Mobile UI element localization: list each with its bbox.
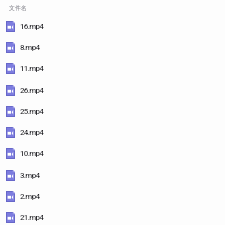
button[interactable]: Video file — [0, 191, 225, 212]
staticText: 11.mp4 — [20, 64, 44, 73]
other: Video file — [6, 21, 15, 32]
button[interactable]: Video file — [0, 85, 225, 106]
other: Video file — [6, 191, 15, 202]
staticText: 16.mp4 — [20, 22, 44, 31]
staticText: 2.mp4 — [20, 192, 40, 201]
button[interactable]: Video file — [0, 42, 225, 63]
button[interactable]: Video file — [0, 212, 225, 225]
button[interactable]: Video file — [0, 106, 225, 127]
other: Video file — [6, 42, 15, 53]
other: Video file — [6, 148, 15, 159]
staticText: 24.mp4 — [20, 128, 44, 137]
other: Video file — [6, 212, 15, 223]
button[interactable]: Video file — [0, 21, 225, 42]
staticText: 10.mp4 — [20, 149, 44, 158]
button[interactable]: Video file — [0, 170, 225, 191]
button[interactable]: Video file — [0, 63, 225, 84]
other: Video file — [6, 63, 15, 74]
staticText: 3.mp4 — [20, 171, 40, 180]
staticText: 文件名 — [9, 4, 27, 11]
staticText: 25.mp4 — [20, 107, 44, 116]
other: Video file — [6, 85, 15, 96]
staticText: 26.mp4 — [20, 86, 44, 95]
button[interactable]: Video file — [0, 148, 225, 169]
other: Video file — [6, 170, 15, 181]
button[interactable]: Video file — [0, 127, 225, 148]
staticText: 8.mp4 — [20, 43, 40, 52]
staticText: 21.mp4 — [20, 213, 44, 222]
other: Video file — [6, 127, 15, 138]
other: Video file — [6, 106, 15, 117]
